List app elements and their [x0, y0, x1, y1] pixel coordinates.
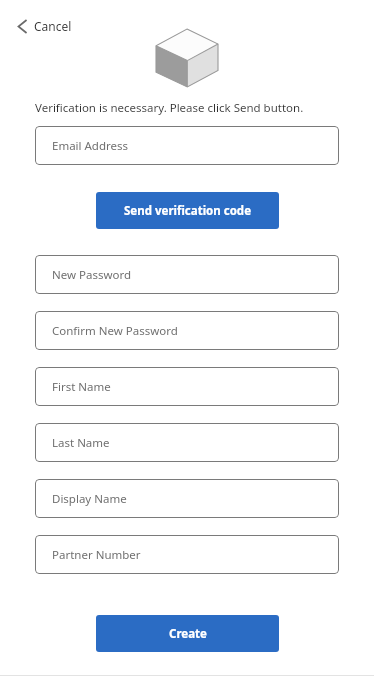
- button[interactable]: New Password: [35, 255, 339, 294]
- staticText: Confirm New Password: [52, 323, 178, 339]
- staticText: Cancel: [34, 18, 72, 34]
- staticText: Create: [169, 626, 207, 642]
- button[interactable]: Back: [16, 16, 74, 36]
- button[interactable]: Send verification code: [96, 192, 279, 229]
- button[interactable]: Email Address: [35, 126, 339, 165]
- staticText: Display Name: [52, 491, 127, 507]
- staticText: Email Address: [52, 138, 129, 154]
- button[interactable]: First Name: [35, 367, 339, 406]
- staticText: First Name: [52, 379, 111, 395]
- staticText: Send verification code: [124, 203, 251, 219]
- staticText: Verification is necessary. Please click …: [35, 100, 304, 116]
- button[interactable]: Confirm New Password: [35, 311, 339, 350]
- staticText: New Password: [52, 267, 132, 283]
- button[interactable]: Partner Number: [35, 535, 339, 574]
- staticText: Partner Number: [52, 547, 141, 563]
- button[interactable]: Create: [96, 615, 279, 652]
- staticText: Last Name: [52, 435, 110, 451]
- button[interactable]: Last Name: [35, 423, 339, 462]
- button[interactable]: Display Name: [35, 479, 339, 518]
- other: Back: [18, 20, 27, 33]
